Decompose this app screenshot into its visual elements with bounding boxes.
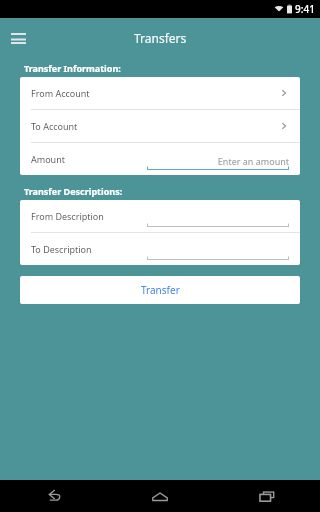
button[interactable]: From Account	[20, 77, 300, 109]
button[interactable]: Transfer	[20, 276, 300, 304]
button[interactable]: To Description	[20, 233, 300, 265]
button[interactable]: To Account	[20, 110, 300, 142]
staticText: Transfer Descriptions:	[24, 185, 123, 197]
staticText: Amount	[31, 153, 65, 165]
button[interactable]: Open navigation menu	[4, 24, 32, 52]
staticText: From Account	[31, 87, 90, 99]
staticText: To Account	[31, 120, 78, 132]
staticText: Transfers	[134, 30, 187, 46]
button[interactable]: From Description	[20, 200, 300, 232]
staticText: 9:41	[295, 2, 315, 16]
staticText: Transfer	[141, 283, 180, 297]
button[interactable]: Amount	[20, 143, 300, 175]
button[interactable]: Home	[106, 480, 213, 512]
staticText: From Description	[31, 210, 104, 222]
button[interactable]: Back	[0, 480, 106, 512]
button[interactable]: Recent apps	[213, 480, 320, 512]
staticText: Enter an amount	[147, 155, 289, 167]
staticText: To Description	[31, 243, 92, 255]
staticText: Transfer Information:	[24, 62, 121, 74]
